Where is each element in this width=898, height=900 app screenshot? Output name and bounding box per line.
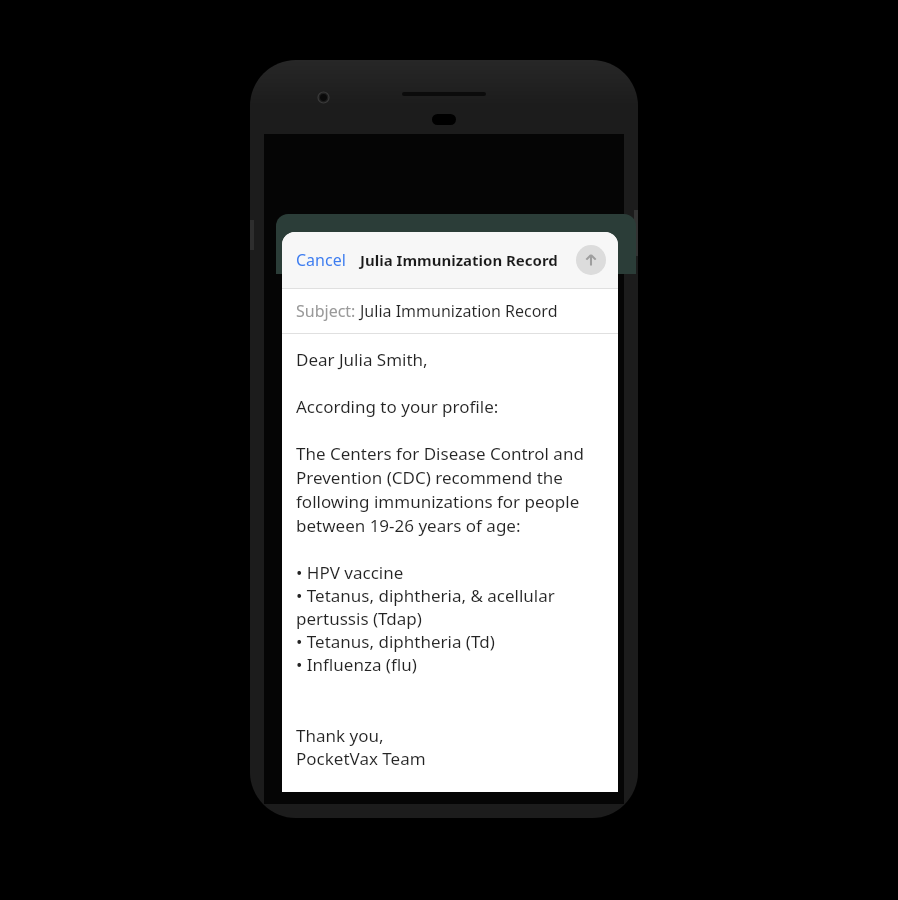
- staticText: According to your profile:: [296, 395, 499, 418]
- button[interactable]: Send: [576, 245, 606, 275]
- staticText: Thank you,: [296, 724, 384, 747]
- staticText: • Tetanus, diphtheria (Td): [296, 630, 495, 653]
- staticText: • Tetanus, diphtheria, & acellular: [296, 584, 555, 607]
- staticText: • HPV vaccine: [296, 561, 404, 584]
- staticText: Julia Immunization Record: [360, 300, 558, 322]
- staticText: • Influenza (flu): [296, 653, 417, 676]
- staticText: The Centers for Disease Control and Prev…: [296, 442, 608, 537]
- staticText: PocketVax Team: [296, 747, 426, 770]
- staticText: Dear Julia Smith,: [296, 348, 428, 371]
- staticText: Subject:: [296, 300, 360, 322]
- button[interactable]: Cancel: [282, 241, 352, 279]
- staticText: Cancel: [296, 249, 346, 271]
- staticText: pertussis (Tdap): [296, 607, 422, 630]
- staticText: Julia Immunization Record: [360, 250, 558, 270]
